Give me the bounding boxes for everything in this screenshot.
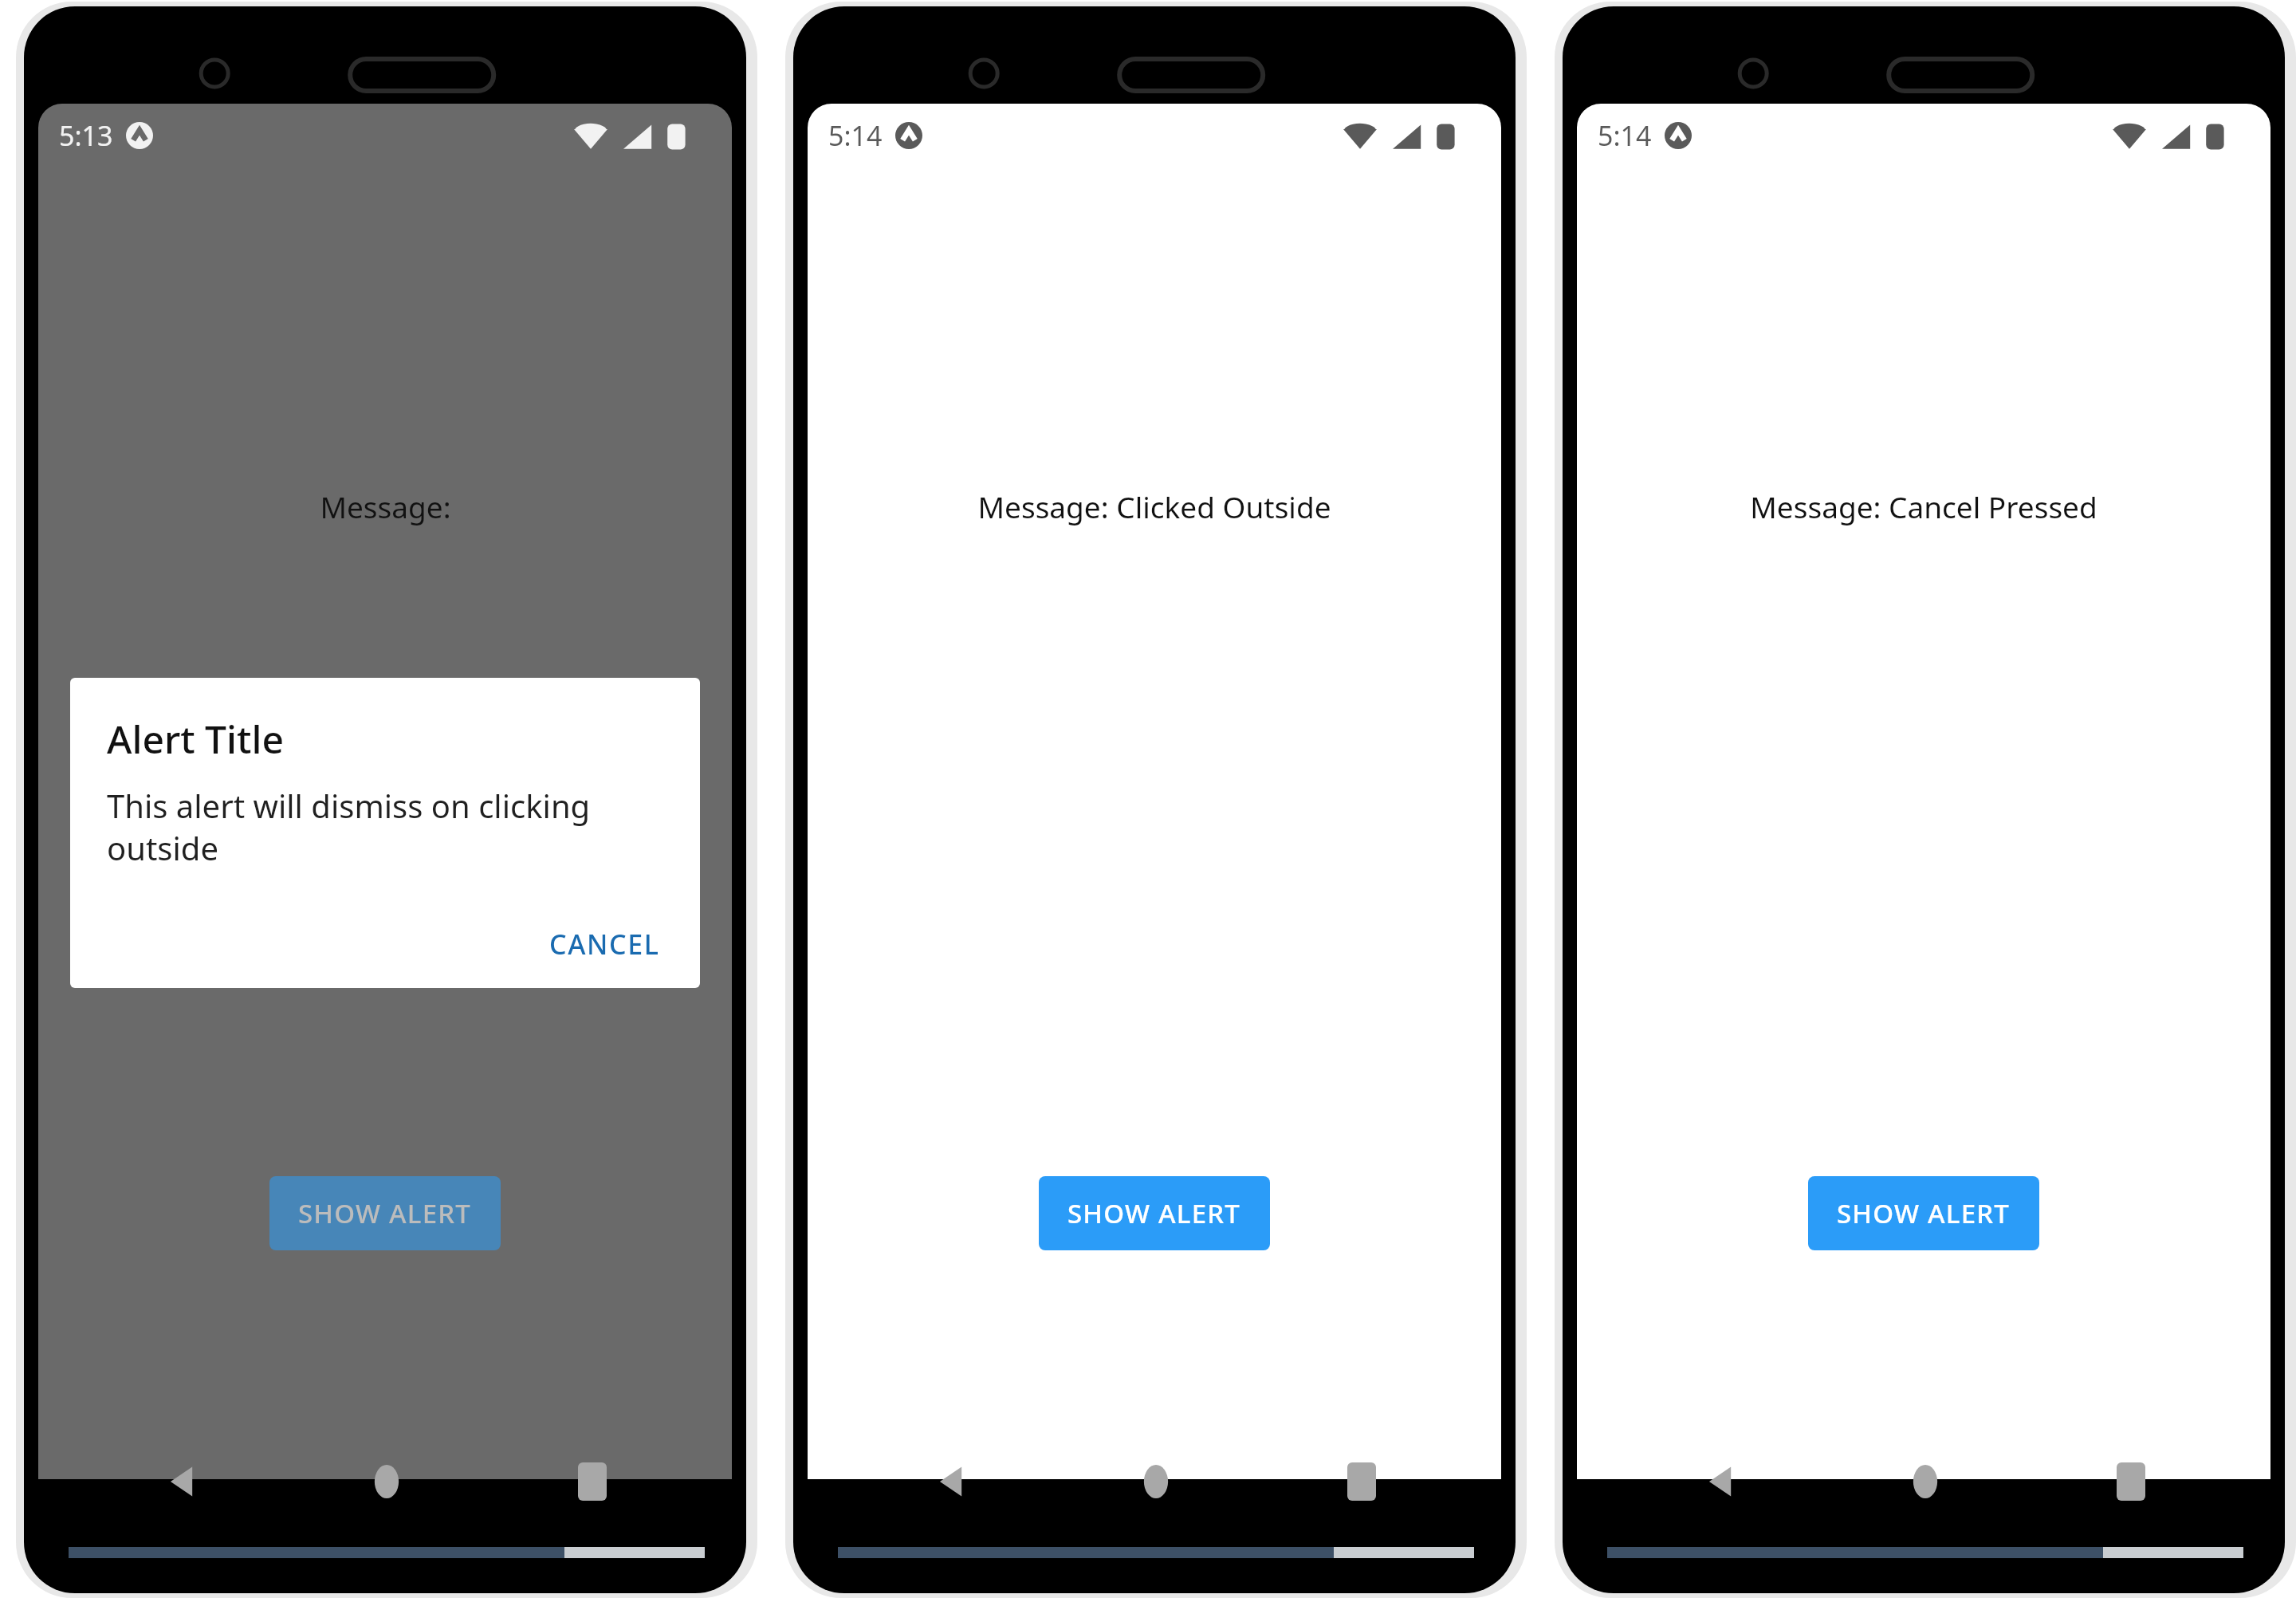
button[interactable]: SHOW ALERT [1808,1176,2039,1250]
button[interactable]: Home [347,1442,427,1521]
staticText: SHOW ALERT [1067,1195,1241,1231]
staticText: Message: Cancel Pressed [1750,486,2097,526]
button[interactable]: Recent apps [2091,1442,2171,1521]
button[interactable]: Back [142,1442,222,1521]
staticText: SHOW ALERT [298,1195,472,1231]
button[interactable]: Home [1116,1442,1196,1521]
staticText: This alert will dismiss on clicking outs… [107,784,673,870]
staticText: 5:13 [59,117,113,154]
button[interactable]: CANCEL [537,915,673,974]
button[interactable]: Back [1681,1442,1760,1521]
button[interactable]: SHOW ALERT [1039,1176,1270,1250]
staticText: SHOW ALERT [1837,1195,2011,1231]
staticText: 5:14 [828,117,883,154]
staticText: Message: Clicked Outside [977,486,1331,526]
staticText: Alert Title [107,713,284,765]
button[interactable]: Recent apps [1322,1442,1402,1521]
staticText: 5:14 [1598,117,1652,154]
button[interactable]: SHOW ALERT [269,1176,501,1250]
button[interactable]: Back [911,1442,991,1521]
staticText: Message: [320,486,451,526]
staticText: CANCEL [549,926,660,962]
button[interactable]: Recent apps [552,1442,632,1521]
button[interactable]: Home [1885,1442,1965,1521]
